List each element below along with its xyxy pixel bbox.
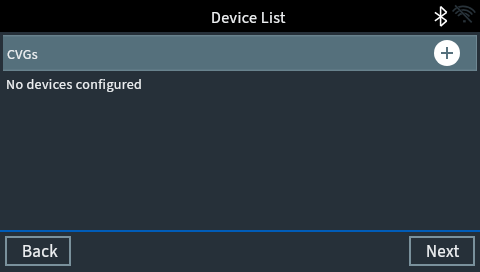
- staticText: Back: [22, 240, 59, 264]
- button[interactable]: Next: [409, 236, 475, 266]
- button[interactable]: Back: [5, 236, 71, 266]
- other: Bluetooth connected: [434, 6, 448, 27]
- button[interactable]: Add device: [434, 40, 460, 66]
- button[interactable]: CVGs: [3, 35, 477, 71]
- staticText: Next: [426, 240, 460, 264]
- staticText: CVGs: [7, 45, 38, 65]
- staticText: Device List: [211, 7, 286, 30]
- other: Wi-Fi off: [451, 3, 478, 26]
- staticText: No devices configured: [6, 75, 143, 95]
